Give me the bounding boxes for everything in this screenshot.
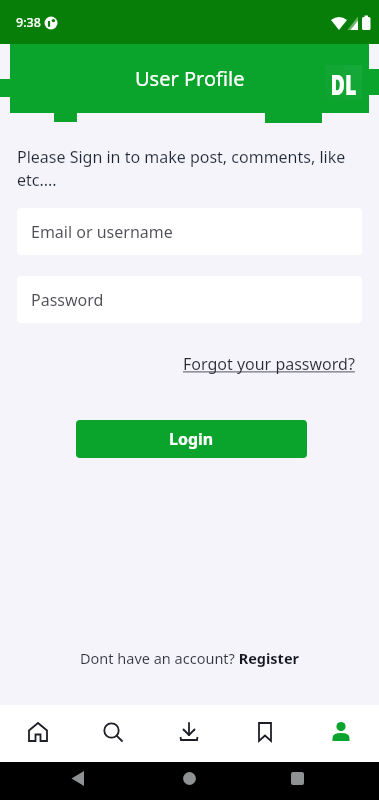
button[interactable]: DL (325, 65, 362, 100)
button[interactable] (303, 705, 379, 762)
staticText: User Profile (135, 65, 245, 92)
staticText: Please Sign in to make post, comments, l… (17, 146, 346, 191)
staticText: 9:38 (16, 14, 41, 31)
staticText: Login (169, 428, 214, 450)
button[interactable] (75, 705, 151, 762)
button[interactable] (227, 705, 303, 762)
staticText: Email or username (31, 221, 173, 243)
button[interactable]: Password (17, 276, 362, 323)
button[interactable] (0, 705, 75, 762)
button[interactable]: Login (76, 420, 307, 458)
staticText: Password (31, 289, 104, 311)
staticText: DL (330, 65, 356, 100)
button[interactable]: Email or username (17, 208, 362, 255)
button[interactable]: Dont have an account? Register (80, 648, 300, 668)
button[interactable] (151, 705, 227, 762)
button[interactable]: Forgot your password? (183, 353, 355, 375)
